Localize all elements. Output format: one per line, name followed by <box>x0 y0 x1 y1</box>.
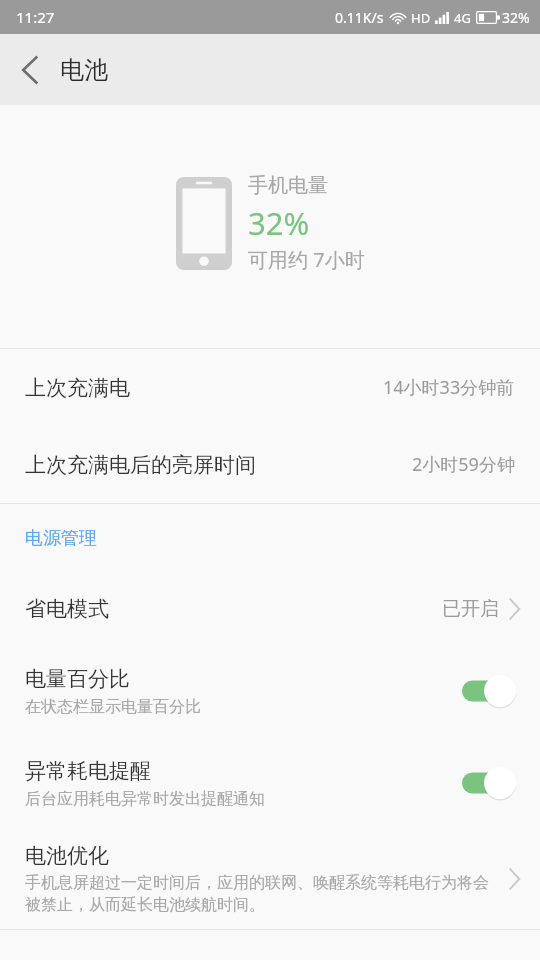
staticText: 32% <box>248 202 310 244</box>
staticText: 手机息屏超过一定时间后，应用的联网、唤醒系统等耗电行为将会被禁止，从而延长电池续… <box>25 873 501 915</box>
staticText: 在状态栏显示电量百分比 <box>25 697 201 717</box>
staticText: 32% <box>502 8 530 27</box>
staticText: 上次充满电后的亮屏时间 <box>25 452 256 478</box>
button[interactable]: 异常耗电提醒 <box>0 737 540 829</box>
staticText: 上次充满电 <box>25 375 130 401</box>
button[interactable]: 电量百分比 <box>0 645 540 737</box>
staticText: 已开启 <box>442 597 499 621</box>
staticText: 2小时59分钟 <box>412 452 515 477</box>
staticText: 14小时33分钟前 <box>383 375 515 400</box>
button[interactable]: 省电模式 <box>0 572 540 645</box>
staticText: 电池 <box>60 55 108 85</box>
staticText: 电池优化 <box>25 843 109 869</box>
staticText: 电量百分比 <box>25 666 130 692</box>
button[interactable]: 上次充满电后的亮屏时间 <box>0 426 540 503</box>
button[interactable]: Back <box>0 40 60 100</box>
staticText: 省电模式 <box>25 596 109 622</box>
button[interactable]: 电池优化 <box>0 829 540 929</box>
staticText: 异常耗电提醒 <box>25 758 151 784</box>
staticText: HD <box>411 9 431 27</box>
staticText: 手机电量 <box>248 173 328 198</box>
staticText: 可用约 7小时 <box>248 246 365 273</box>
staticText: 11:27 <box>16 7 55 27</box>
staticText: 4G <box>454 9 471 27</box>
staticText: 0.11K/s <box>335 8 384 27</box>
staticText: 后台应用耗电异常时发出提醒通知 <box>25 789 265 809</box>
staticText: 电源管理 <box>25 527 97 550</box>
button[interactable]: 上次充满电 <box>0 349 540 426</box>
